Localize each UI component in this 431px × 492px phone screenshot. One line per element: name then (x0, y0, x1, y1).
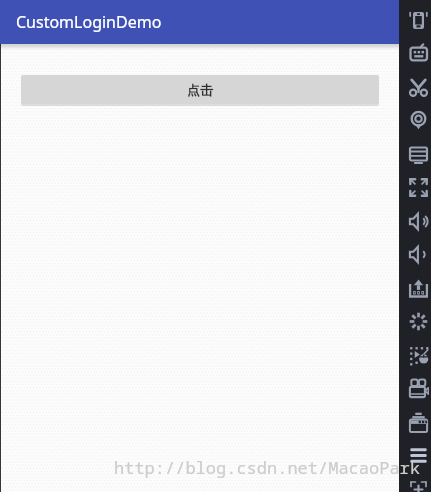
button[interactable] (399, 272, 431, 305)
button[interactable] (399, 305, 431, 338)
button[interactable] (399, 439, 431, 472)
button[interactable]: 点击 (21, 75, 379, 104)
button[interactable] (399, 4, 431, 37)
button[interactable] (399, 37, 431, 70)
button[interactable] (399, 138, 431, 171)
button[interactable] (399, 473, 431, 492)
button[interactable] (399, 339, 431, 372)
staticText: CustomLoginDemo (16, 11, 162, 33)
button[interactable] (399, 238, 431, 271)
button[interactable] (399, 205, 431, 238)
button[interactable] (399, 372, 431, 405)
button[interactable] (399, 171, 431, 204)
button[interactable] (399, 104, 431, 137)
button[interactable] (399, 406, 431, 439)
staticText: 点击 (187, 82, 213, 98)
button[interactable] (399, 71, 431, 104)
staticText: http://blog.csdn.net/MacaoPark (114, 456, 420, 479)
